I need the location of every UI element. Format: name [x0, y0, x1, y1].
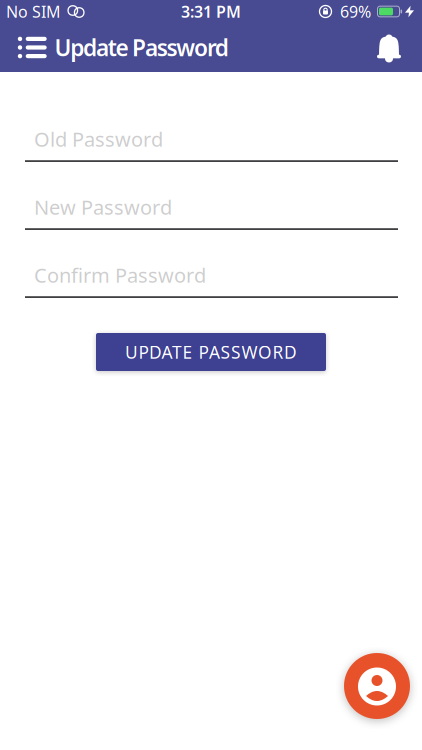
staticText: Old Password	[34, 126, 163, 152]
staticText: 3:31 PM	[181, 1, 241, 22]
staticText: Update Password	[54, 32, 229, 62]
button[interactable]	[0, 37, 46, 58]
button[interactable]: New Password	[25, 192, 398, 230]
button[interactable]	[377, 33, 422, 61]
staticText: No SIM	[6, 1, 61, 22]
button[interactable]: Confirm Password	[25, 260, 398, 298]
button[interactable]	[344, 653, 410, 719]
button[interactable]: Old Password	[25, 124, 398, 162]
staticText: 69%	[340, 1, 371, 22]
staticText: New Password	[34, 194, 172, 220]
staticText: UPDATE PASSWORD	[125, 340, 297, 363]
staticText: Confirm Password	[34, 262, 206, 288]
button[interactable]: UPDATE PASSWORD	[96, 333, 326, 371]
